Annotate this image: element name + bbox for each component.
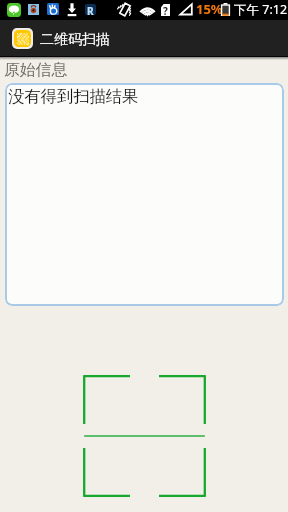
staticText: 15% bbox=[196, 0, 223, 18]
staticText: ? bbox=[163, 4, 168, 16]
staticText: 原始信息 bbox=[4, 60, 68, 80]
staticText: R bbox=[87, 4, 94, 15]
other: Download bbox=[66, 3, 78, 16]
staticText: 没有得到扫描结果 bbox=[8, 86, 139, 107]
staticText: 二维码扫描 bbox=[40, 31, 110, 49]
staticText: 下午 7:12 bbox=[234, 1, 288, 18]
button[interactable]: 没有得到扫描结果 bbox=[5, 83, 284, 306]
